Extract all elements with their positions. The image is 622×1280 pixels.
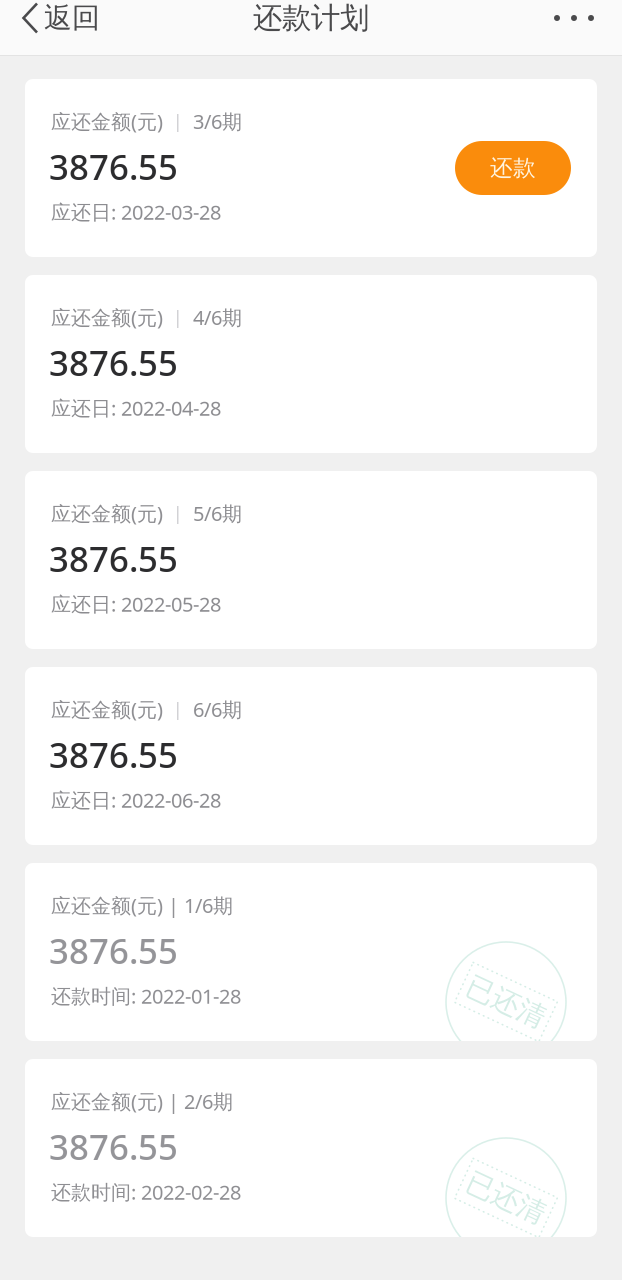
staticText: 3/6期 — [183, 108, 242, 135]
staticText: 应还金额(元) | 1/6期 — [51, 892, 233, 919]
staticText: | — [173, 698, 183, 721]
staticText: 应还日: 2022-03-28 — [51, 199, 221, 225]
button[interactable]: 还款 — [455, 141, 571, 195]
staticText: 3876.55 — [49, 732, 178, 778]
staticText: 3876.55 — [49, 144, 178, 190]
staticText: 应还金额(元) — [51, 108, 173, 135]
button[interactable]: 更多 — [528, 0, 622, 36]
staticText: 已还清 — [464, 985, 548, 1019]
staticText: 应还日: 2022-04-28 — [51, 395, 221, 421]
staticText: 3876.55 — [49, 340, 178, 386]
staticText: | — [173, 306, 183, 329]
staticText: 3876.55 — [49, 1124, 178, 1170]
staticText: 应还金额(元) — [51, 696, 173, 723]
staticText: 应还金额(元) | 2/6期 — [51, 1088, 233, 1115]
staticText: 应还金额(元) — [51, 500, 173, 527]
staticText: 应还日: 2022-06-28 — [51, 787, 221, 813]
staticText: 还款计划 — [253, 0, 369, 36]
staticText: 还款时间: 2022-01-28 — [51, 983, 241, 1009]
staticText: 还款时间: 2022-02-28 — [51, 1179, 241, 1205]
staticText: 返回 — [44, 1, 100, 35]
staticText: 3876.55 — [49, 536, 178, 582]
staticText: 3876.55 — [49, 928, 178, 974]
staticText: 还款 — [490, 154, 536, 182]
staticText: | — [173, 502, 183, 525]
staticText: | — [173, 110, 183, 133]
button[interactable]: 返回 — [0, 0, 112, 36]
staticText: 应还日: 2022-05-28 — [51, 591, 221, 617]
staticText: 5/6期 — [183, 500, 242, 527]
staticText: 应还金额(元) — [51, 304, 173, 331]
staticText: 6/6期 — [183, 696, 242, 723]
staticText: 4/6期 — [183, 304, 242, 331]
staticText: 已还清 — [464, 1181, 548, 1215]
